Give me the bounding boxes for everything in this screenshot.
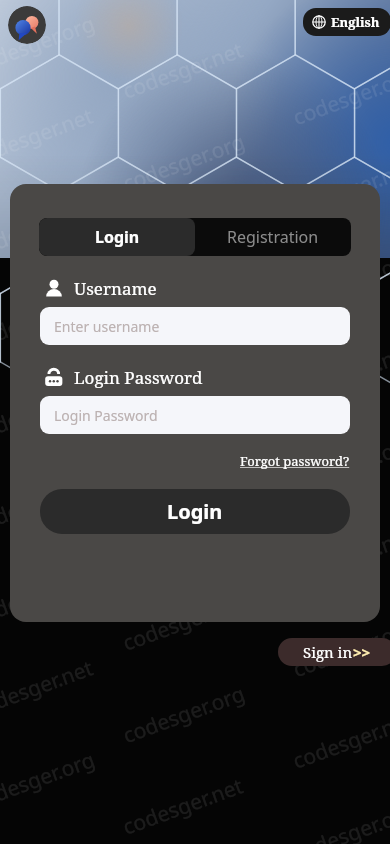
staticText: codesger.net [0,469,97,540]
staticText: Login Password [74,366,203,389]
staticText: codesger.net [119,403,247,474]
staticText: codesger.org [289,797,390,844]
staticText: codesger.net [119,35,247,106]
staticText: codesger.org [0,745,99,816]
staticText: codesger.org [289,429,390,500]
staticText: Registration [227,226,319,248]
staticText: codesger.org [289,245,390,316]
button[interactable]: English [303,8,390,36]
staticText: codesger.net [0,101,97,172]
staticText: codesger.org [119,495,249,566]
staticText: codesger.net [289,705,390,776]
button[interactable]: Registration [195,218,351,256]
button[interactable]: App logo [8,6,46,44]
staticText: codesger.net [289,521,390,592]
staticText: codesger.org [0,9,99,80]
staticText: Username [74,277,157,300]
staticText: codesger.org [289,61,390,132]
staticText: Login Password [54,406,158,425]
staticText: codesger.org [0,193,99,264]
staticText: codesger.net [0,653,97,724]
staticText: >> [353,642,371,662]
staticText: Login [95,226,140,248]
staticText: codesger.org [119,311,249,382]
button[interactable]: Sign in [278,638,390,666]
button[interactable]: Forgot password? [238,450,352,472]
staticText: Enter username [54,317,160,336]
staticText: codesger.net [289,337,390,408]
staticText: codesger.org [289,613,390,684]
button[interactable]: Login Password [40,396,350,434]
staticText: English [331,13,380,31]
staticText: codesger.net [119,771,247,842]
button[interactable]: Login [40,489,350,534]
staticText: Sign in [303,642,353,662]
staticText: codesger.net [289,153,390,224]
staticText: Login [167,498,223,525]
staticText: codesger.org [0,377,99,448]
staticText: codesger.org [119,127,249,198]
staticText: codesger.net [0,285,97,356]
staticText: codesger.org [0,561,99,632]
button[interactable]: Enter username [40,307,350,345]
button[interactable]: Login [39,218,195,256]
staticText: codesger.net [119,587,247,658]
staticText: codesger.net [119,219,247,290]
staticText: codesger.org [119,679,249,750]
